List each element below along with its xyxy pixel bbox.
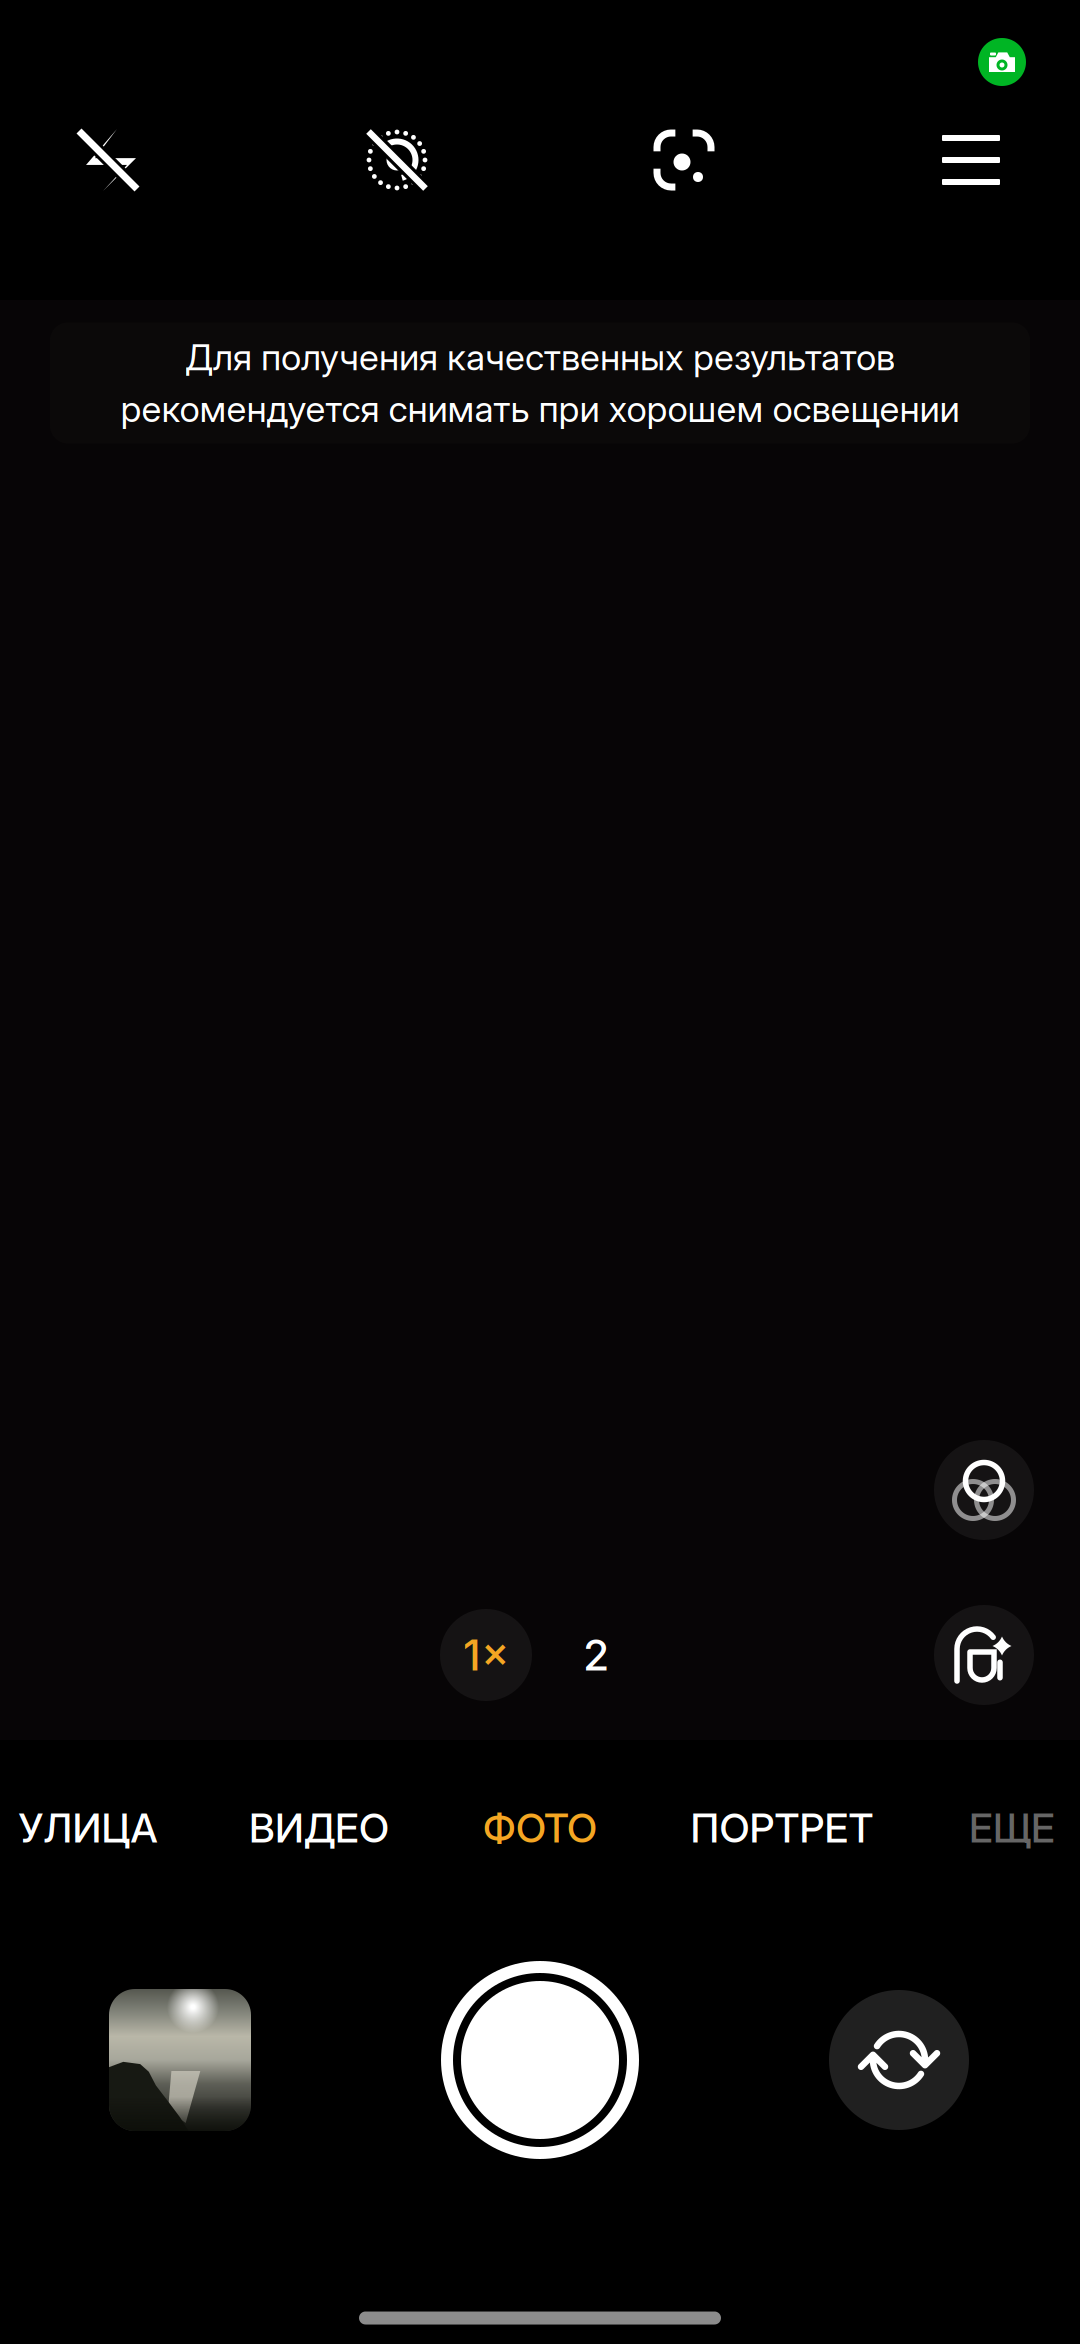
button[interactable]: Photo library — [109, 1989, 251, 2131]
staticText: Для получения качественных результатов — [185, 335, 895, 379]
button[interactable]: УЛИЦА — [0, 1785, 203, 1871]
button[interactable]: 2 — [550, 1609, 642, 1701]
staticText: УЛИЦА — [18, 1804, 157, 1852]
staticText: ЕЩЕ — [969, 1804, 1055, 1852]
button[interactable]: Live Photo off — [327, 100, 467, 220]
button[interactable]: Retouch — [934, 1605, 1034, 1705]
button[interactable]: ПОРТРЕТ — [642, 1785, 922, 1871]
staticText: 2 — [583, 1629, 609, 1681]
button[interactable]: Switch camera — [829, 1990, 969, 2130]
button[interactable]: Filters — [934, 1440, 1034, 1540]
button[interactable]: 1× — [440, 1609, 532, 1701]
button[interactable]: Scan — [614, 100, 754, 220]
staticText: рекомендуется снимать при хорошем освеще… — [120, 387, 959, 431]
staticText: 1× — [463, 1629, 509, 1681]
button[interactable]: ФОТО — [425, 1785, 655, 1871]
button[interactable]: More settings — [901, 100, 1041, 220]
staticText: ПОРТРЕТ — [690, 1804, 873, 1852]
button[interactable]: ЕЩЕ — [897, 1785, 1080, 1871]
button[interactable]: ВИДЕО — [204, 1785, 434, 1871]
button[interactable]: Take photo — [441, 1961, 639, 2159]
button[interactable]: Flash off — [38, 100, 178, 220]
staticText: ФОТО — [483, 1804, 597, 1852]
staticText: ВИДЕО — [249, 1804, 389, 1852]
